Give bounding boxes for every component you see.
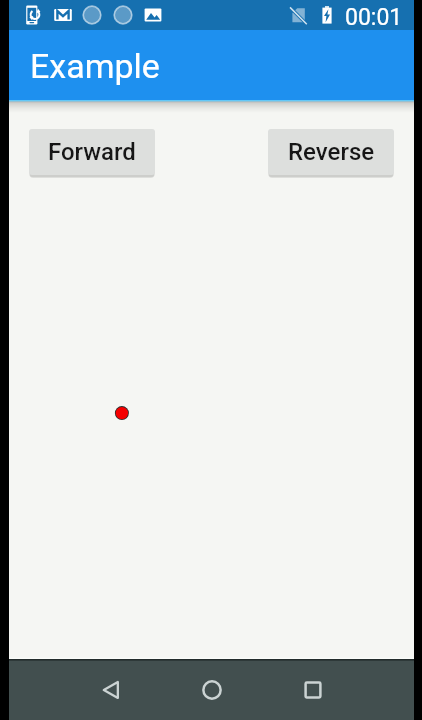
staticText: Forward bbox=[48, 138, 136, 166]
button[interactable]: Back bbox=[86, 659, 136, 720]
button[interactable]: Home bbox=[187, 659, 237, 720]
button[interactable]: Forward bbox=[29, 129, 155, 175]
staticText: Example bbox=[30, 46, 160, 86]
button[interactable]: Reverse bbox=[268, 129, 394, 175]
staticText: 00:01 bbox=[345, 4, 403, 31]
button[interactable]: Recents bbox=[288, 659, 338, 720]
staticText: Reverse bbox=[288, 138, 375, 166]
